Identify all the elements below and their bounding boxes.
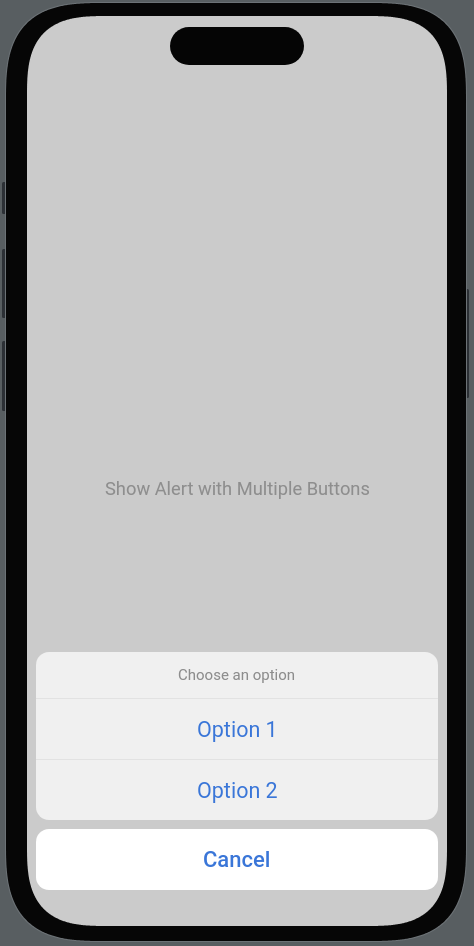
other: Dynamic Island	[170, 27, 304, 65]
staticText: Option 1	[197, 717, 278, 742]
button[interactable]: Cancel	[36, 829, 438, 890]
staticText: Show Alert with Multiple Buttons	[105, 478, 370, 499]
staticText: Choose an option	[178, 666, 296, 684]
button[interactable]: Option 1	[36, 699, 438, 759]
staticText: Cancel	[203, 847, 271, 873]
button[interactable]: Option 2	[36, 760, 438, 820]
button[interactable]: Show Alert with Multiple Buttons	[105, 471, 370, 505]
staticText: Option 2	[197, 778, 278, 803]
